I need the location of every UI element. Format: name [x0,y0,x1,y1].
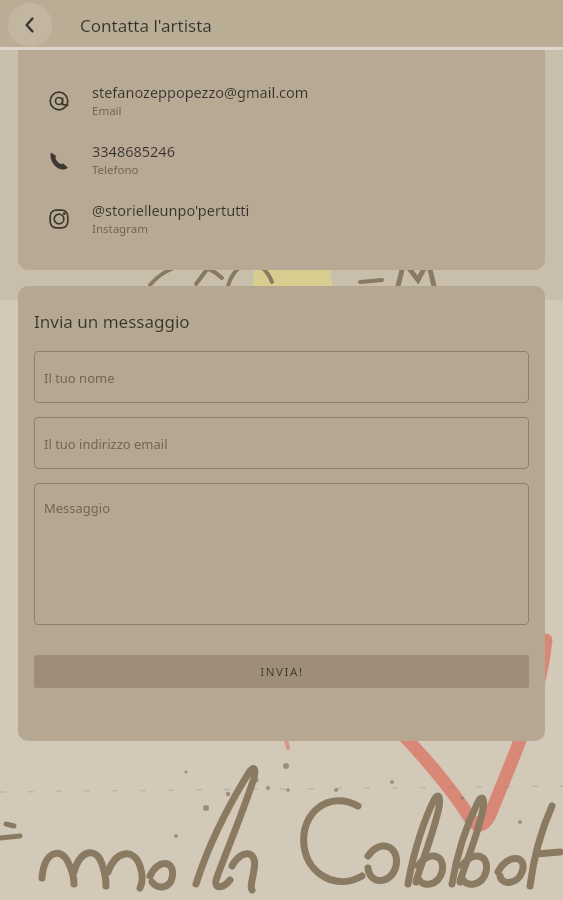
button[interactable]: stefanozeppopezzo@gmail.com [18,82,545,119]
button[interactable]: Messaggio [34,483,529,625]
staticText: Contatta l'artista [80,14,212,37]
button[interactable]: @storielleunpo'pertutti [18,200,545,237]
staticText: stefanozeppopezzo@gmail.com [92,82,309,102]
staticText: INVIA! [260,664,304,680]
staticText: Email [92,103,122,119]
button[interactable]: 3348685246 [18,141,545,178]
staticText: Instagram [92,221,148,237]
staticText: Telefono [92,162,139,178]
staticText: Il tuo nome [44,369,115,387]
button[interactable]: INVIA! [34,655,529,688]
button[interactable]: Il tuo nome [34,351,529,403]
staticText: Invia un messaggio [34,310,190,333]
staticText: Il tuo indirizzo email [44,435,168,453]
staticText: @storielleunpo'pertutti [92,200,250,220]
staticText: 3348685246 [92,141,175,161]
staticText: Messaggio [44,499,111,517]
button[interactable]: Il tuo indirizzo email [34,417,529,469]
button[interactable]: Back [8,3,52,47]
